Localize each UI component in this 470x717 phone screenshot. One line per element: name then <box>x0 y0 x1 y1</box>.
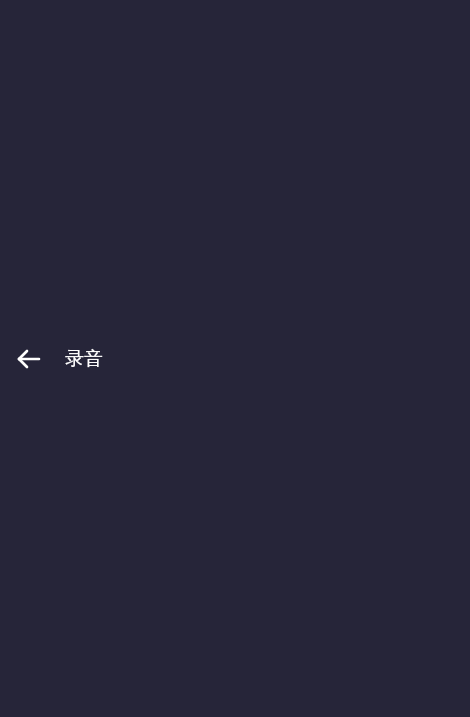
staticText: 录音 <box>65 347 103 371</box>
button[interactable]: Back <box>8 338 50 380</box>
